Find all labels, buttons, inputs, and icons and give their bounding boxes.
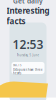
staticText: Interesting facts — [6, 5, 49, 26]
staticText: 12:53 — [12, 36, 43, 52]
staticText: FACTS — [13, 63, 21, 67]
staticText: Get daily — [13, 0, 43, 5]
staticText: Octopuses have three hearts — [13, 68, 43, 75]
staticText: Thursday, 5 June — [16, 53, 39, 57]
